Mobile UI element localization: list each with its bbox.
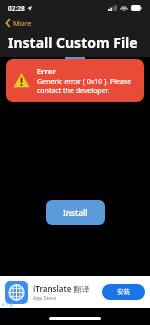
button[interactable]: More [0,16,150,30]
staticText: Install [63,207,88,218]
staticText: 安装 [117,288,130,296]
staticText: Error [37,66,56,76]
staticText: 02:28 [8,4,25,13]
button[interactable]: iTranslate 翻译 [0,276,150,308]
button[interactable]: Error [6,59,144,102]
button[interactable]: 安装 [102,284,145,300]
staticText: App Store [33,295,57,302]
staticText: More [13,18,32,28]
staticText: iTranslate 翻译 [33,283,90,294]
button[interactable]: Install [46,200,105,225]
staticText: Install Custom File [8,33,138,52]
staticText: Generic error ( 0x10 ). Please contact t… [37,77,137,95]
staticText: ✕ 广告 [1,302,14,307]
